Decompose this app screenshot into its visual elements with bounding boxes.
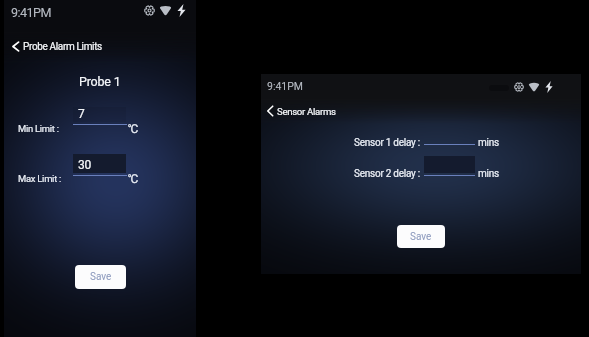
button[interactable]: Probe Alarm Limits <box>10 38 110 56</box>
staticText: Max Limit : <box>18 173 62 184</box>
button[interactable]: Edit value <box>73 154 126 173</box>
staticText: Min Limit : <box>18 123 59 134</box>
staticText: 7 <box>78 107 85 121</box>
other: Wi-Fi <box>528 82 540 92</box>
button[interactable]: Settings <box>144 5 155 16</box>
other: Charging <box>545 81 553 93</box>
button[interactable]: Sensor Alarms <box>264 102 356 120</box>
staticText: ℃ <box>128 172 139 186</box>
button[interactable]: Edit value <box>73 107 126 122</box>
button[interactable]: Settings <box>514 82 524 92</box>
staticText: Sensor Alarms <box>277 106 336 117</box>
staticText: Sensor 2 delay : <box>354 168 420 180</box>
button[interactable]: Save <box>397 225 445 248</box>
staticText: 9:41PM <box>267 80 304 92</box>
staticText: Save <box>410 231 432 243</box>
staticText: Probe Alarm Limits <box>23 41 102 53</box>
staticText: mins <box>478 137 499 149</box>
button[interactable]: Save <box>75 265 126 289</box>
staticText: Save <box>90 271 112 283</box>
staticText: ℃ <box>128 122 139 136</box>
other: Wi-Fi <box>159 5 172 16</box>
staticText: 9:41PM <box>11 5 51 20</box>
staticText: 30 <box>78 158 91 172</box>
staticText: mins <box>478 168 499 180</box>
staticText: Probe 1 <box>79 74 121 89</box>
staticText: Sensor 1 delay : <box>354 137 420 149</box>
other: Charging <box>177 4 186 17</box>
